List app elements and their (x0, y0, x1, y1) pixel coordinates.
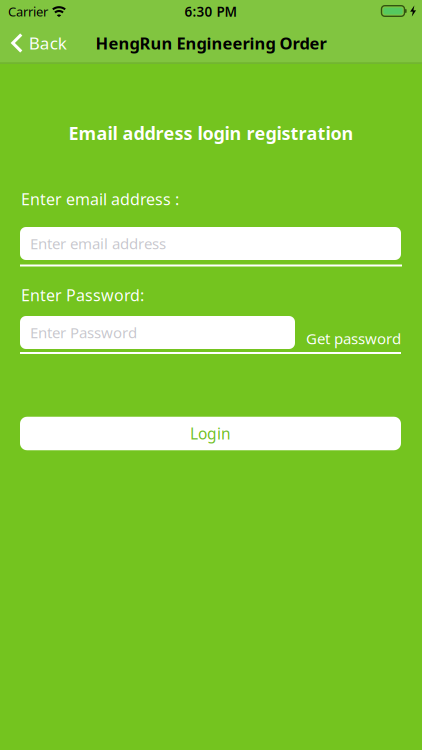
staticText: Carrier (8, 3, 48, 20)
button[interactable]: Get password (221, 328, 401, 349)
staticText: 6:30 PM (184, 2, 237, 21)
staticText: Email address login registration (68, 121, 353, 145)
staticText: Enter Password (30, 322, 137, 343)
button[interactable]: Login (20, 417, 401, 450)
staticText: Login (190, 423, 231, 444)
staticText: Back (29, 31, 67, 55)
button[interactable]: Enter Password (20, 316, 295, 349)
staticText: Enter email address : (21, 188, 179, 210)
staticText: Enter Password: (21, 284, 144, 306)
button[interactable]: Back (11, 31, 67, 55)
staticText: HengRun Engineering Order (95, 32, 326, 54)
button[interactable]: Enter email address (20, 227, 401, 260)
staticText: Enter email address (30, 233, 166, 254)
staticText: Get password (306, 328, 401, 349)
